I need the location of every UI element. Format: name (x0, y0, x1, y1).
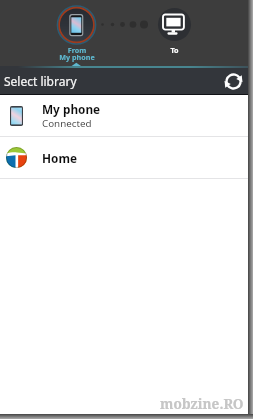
staticText: Connected (42, 117, 92, 130)
staticText: My phone (47, 52, 107, 62)
staticText: Select library (4, 73, 77, 89)
button[interactable]: To (152, 6, 197, 56)
button[interactable]: From My phone (46, 3, 107, 65)
button[interactable]: Home (0, 137, 253, 179)
staticText: Home (42, 150, 77, 166)
staticText: mobzine.RO (160, 394, 244, 413)
staticText: My phone (42, 101, 101, 117)
button[interactable]: My phone (0, 95, 253, 137)
staticText: To (158, 45, 191, 55)
staticText: From (47, 45, 107, 55)
button[interactable]: Refresh (221, 69, 245, 93)
